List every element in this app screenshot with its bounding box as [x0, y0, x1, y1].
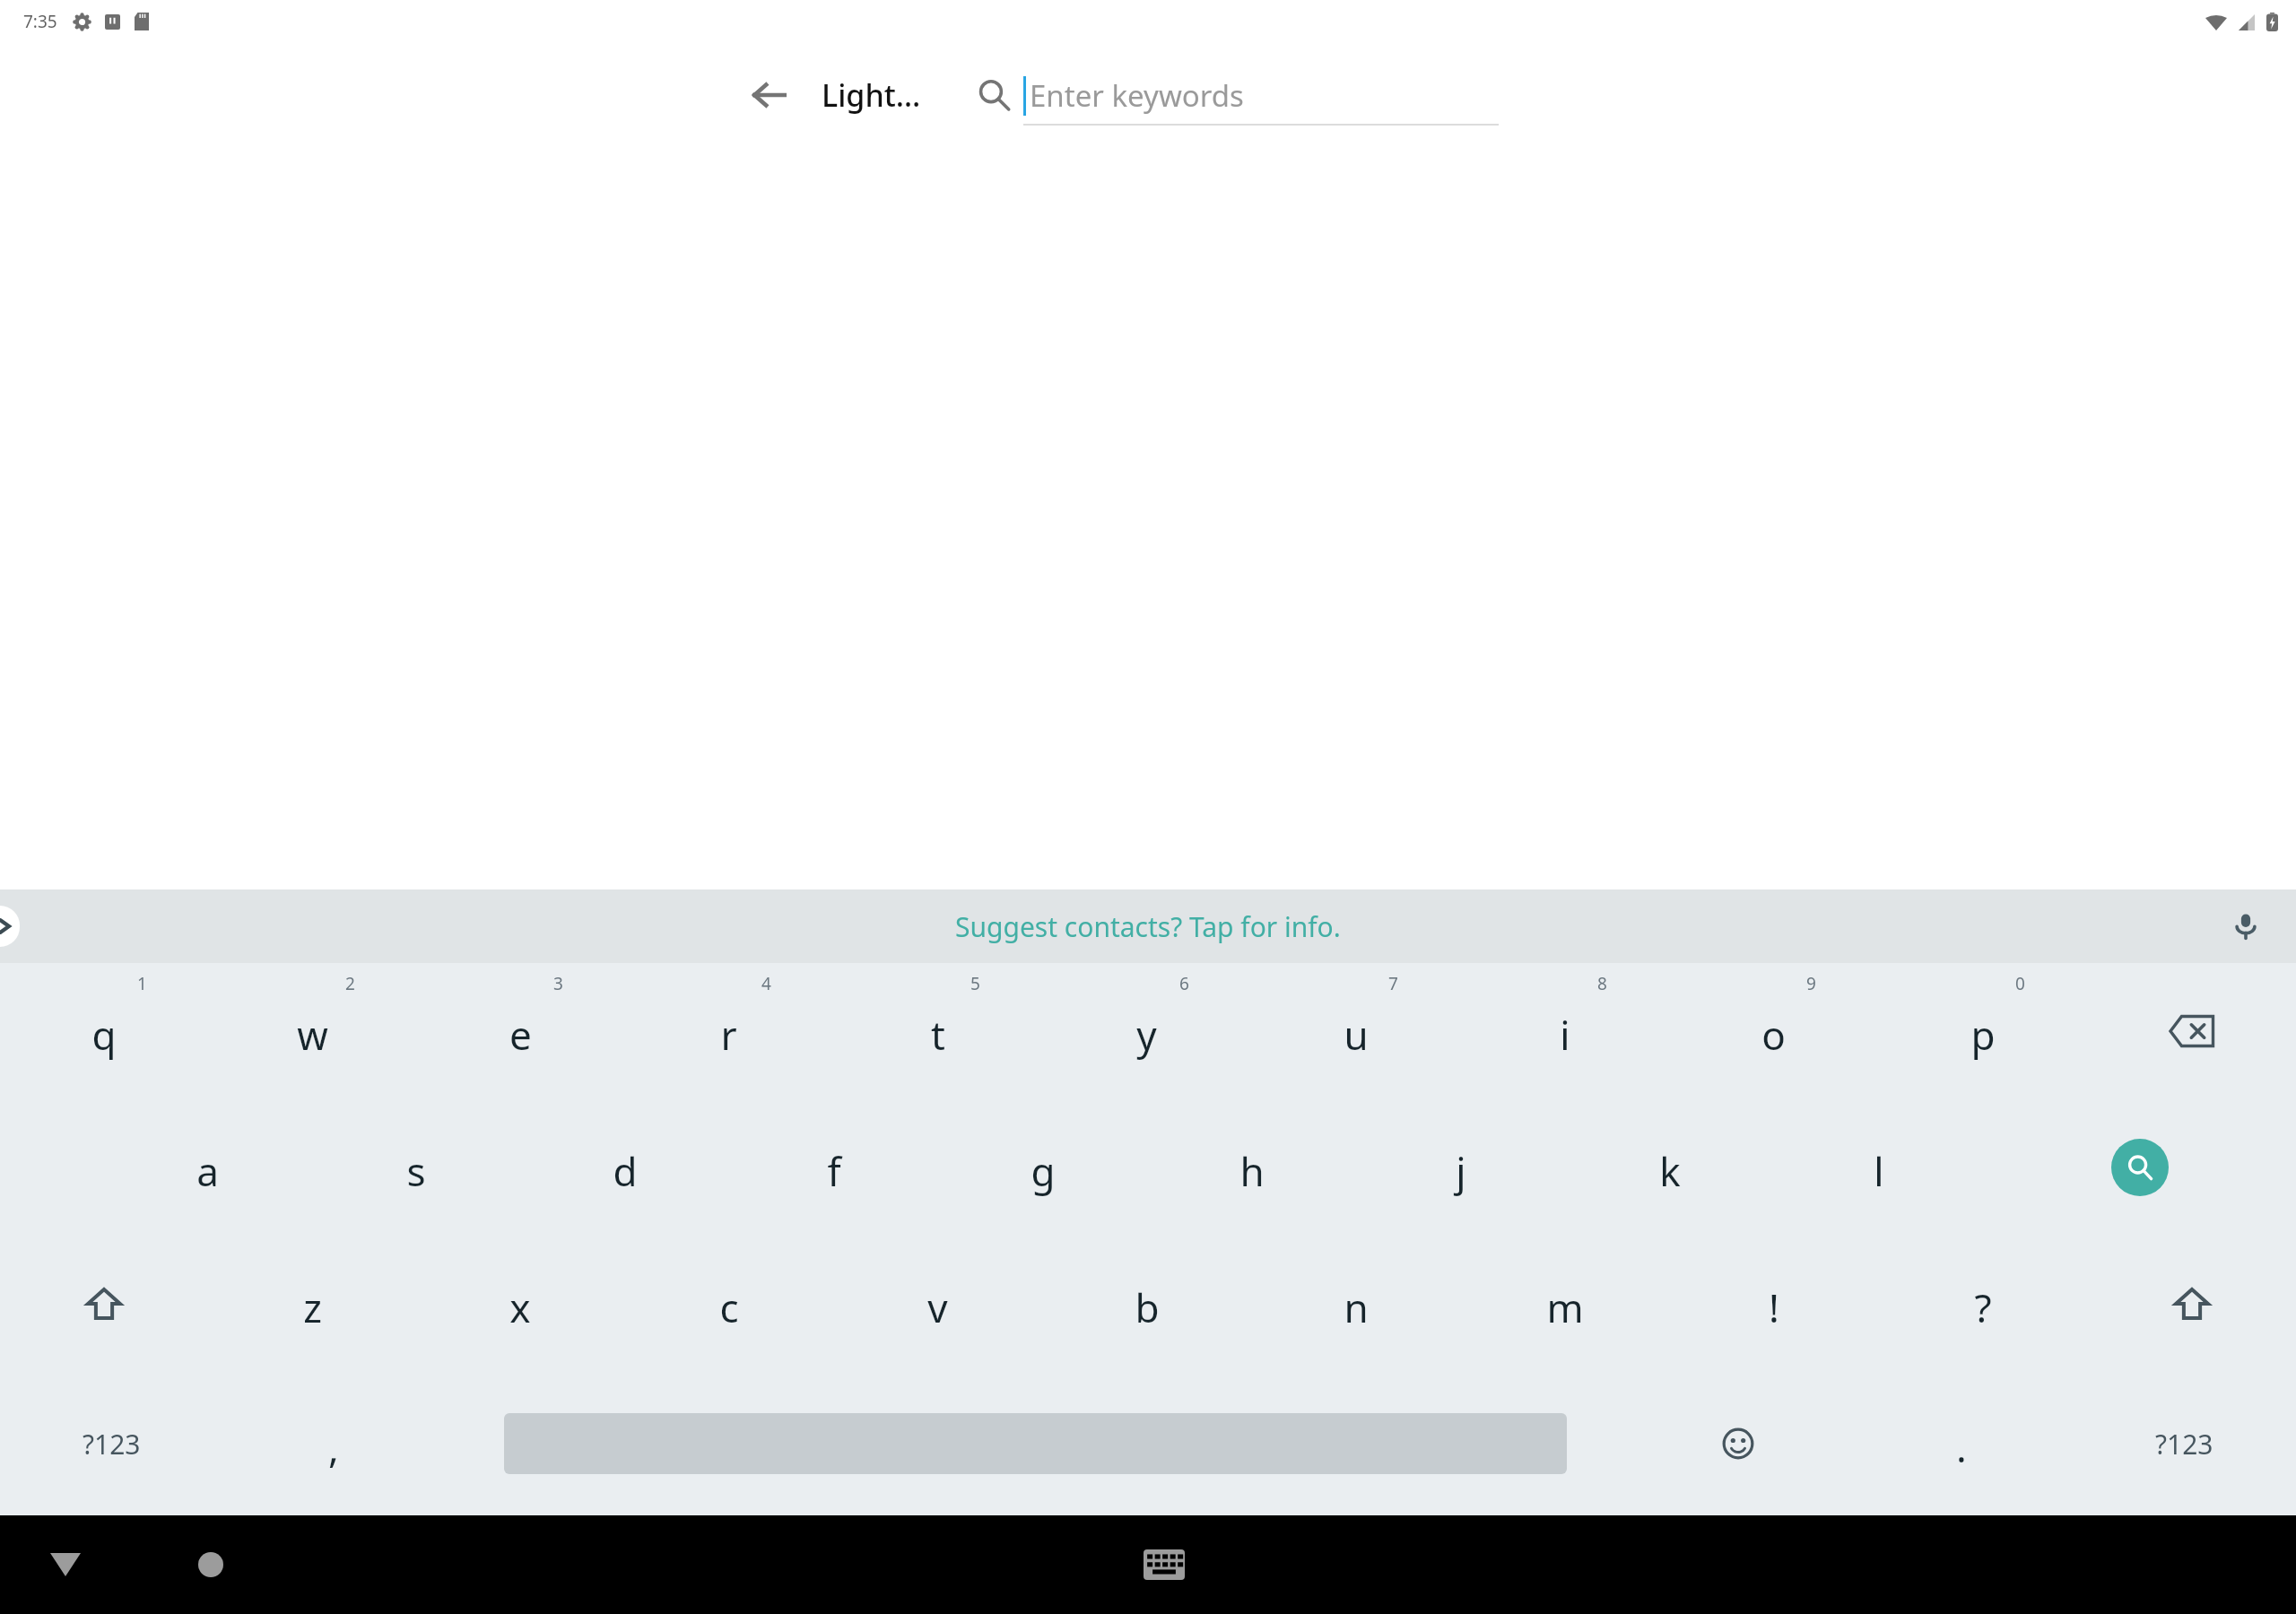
button[interactable]: ?123: [2073, 1372, 2296, 1515]
button[interactable]: l: [1774, 1099, 1983, 1236]
button[interactable]: 7: [1251, 963, 1460, 1099]
staticText: 1: [137, 972, 147, 995]
button[interactable]: Back: [735, 61, 804, 129]
button[interactable]: z: [208, 1236, 416, 1372]
button[interactable]: d: [520, 1099, 729, 1236]
button[interactable]: j: [1356, 1099, 1565, 1236]
staticText: 6: [1179, 972, 1189, 995]
staticText: p: [1970, 1008, 1996, 1062]
button[interactable]: .: [1849, 1372, 2073, 1515]
button[interactable]: n: [1251, 1236, 1460, 1372]
staticText: b: [1135, 1280, 1160, 1334]
button[interactable]: Search: [1983, 1099, 2296, 1236]
staticText: 7: [1388, 972, 1398, 995]
button[interactable]: x: [416, 1236, 624, 1372]
staticText: d: [613, 1144, 638, 1198]
staticText: ?123: [2155, 1426, 2213, 1462]
staticText: s: [406, 1144, 426, 1198]
staticText: w: [297, 1008, 328, 1062]
staticText: h: [1239, 1144, 1265, 1198]
staticText: Light…: [822, 74, 921, 116]
button[interactable]: Expand suggestions: [0, 906, 20, 947]
button[interactable]: 3: [416, 963, 624, 1099]
staticText: .: [1956, 1420, 1967, 1474]
button[interactable]: g: [938, 1099, 1147, 1236]
staticText: 2: [345, 972, 355, 995]
staticText: j: [1456, 1144, 1466, 1198]
staticText: 9: [1806, 972, 1816, 995]
button[interactable]: Enter keywords: [1023, 59, 1499, 131]
staticText: ?: [1974, 1280, 1992, 1334]
staticText: 3: [553, 972, 563, 995]
button[interactable]: 0: [1878, 963, 2087, 1099]
button[interactable]: !: [1669, 1236, 1878, 1372]
button[interactable]: b: [1042, 1236, 1251, 1372]
staticText: y: [1136, 1008, 1157, 1062]
button[interactable]: 5: [833, 963, 1042, 1099]
button[interactable]: 8: [1460, 963, 1669, 1099]
button[interactable]: ?: [1878, 1236, 2087, 1372]
other: Search: [977, 78, 1011, 112]
staticText: Suggest contacts? Tap for info.: [955, 908, 1341, 945]
staticText: g: [1031, 1144, 1056, 1198]
button[interactable]: 6: [1042, 963, 1251, 1099]
staticText: f: [827, 1144, 841, 1198]
staticText: i: [1560, 1008, 1570, 1062]
button[interactable]: Space: [445, 1372, 1626, 1515]
staticText: ,: [328, 1420, 339, 1474]
staticText: t: [931, 1008, 945, 1062]
staticText: 4: [761, 972, 771, 995]
button[interactable]: f: [729, 1099, 938, 1236]
staticText: 0: [2015, 972, 2025, 995]
button[interactable]: c: [624, 1236, 833, 1372]
button[interactable]: 2: [208, 963, 416, 1099]
button[interactable]: 9: [1669, 963, 1878, 1099]
staticText: 7:35: [23, 10, 57, 33]
button[interactable]: Shift: [0, 1236, 208, 1372]
button[interactable]: s: [311, 1099, 520, 1236]
staticText: m: [1546, 1280, 1584, 1334]
button[interactable]: Shift: [2087, 1236, 2296, 1372]
staticText: q: [91, 1008, 117, 1062]
staticText: c: [719, 1280, 739, 1334]
button[interactable]: a: [103, 1099, 311, 1236]
staticText: z: [303, 1280, 322, 1334]
button[interactable]: Hide keyboard: [34, 1533, 97, 1596]
staticText: u: [1344, 1008, 1369, 1062]
staticText: !: [1769, 1280, 1779, 1334]
button[interactable]: Suggest contacts? Tap for info.: [955, 908, 1341, 945]
staticText: k: [1659, 1144, 1681, 1198]
staticText: e: [509, 1008, 532, 1062]
staticText: n: [1344, 1280, 1369, 1334]
staticText: 8: [1597, 972, 1607, 995]
button[interactable]: Voice input: [2221, 901, 2271, 951]
button[interactable]: Backspace: [2087, 963, 2296, 1099]
staticText: Enter keywords: [1030, 75, 1244, 116]
button[interactable]: 4: [624, 963, 833, 1099]
button[interactable]: Switch keyboard: [1130, 1531, 1198, 1599]
button[interactable]: Emoji: [1626, 1372, 1849, 1515]
staticText: r: [720, 1008, 737, 1062]
button[interactable]: ,: [222, 1372, 445, 1515]
button[interactable]: ?123: [0, 1372, 222, 1515]
button[interactable]: h: [1147, 1099, 1356, 1236]
staticText: v: [927, 1280, 948, 1334]
staticText: x: [509, 1280, 531, 1334]
button[interactable]: m: [1460, 1236, 1669, 1372]
staticText: ?123: [83, 1426, 141, 1462]
button[interactable]: Home: [179, 1533, 242, 1596]
button[interactable]: 1: [0, 963, 208, 1099]
staticText: o: [1761, 1008, 1786, 1062]
staticText: 5: [970, 972, 980, 995]
button[interactable]: v: [833, 1236, 1042, 1372]
staticText: a: [196, 1144, 219, 1198]
staticText: l: [1874, 1144, 1884, 1198]
button[interactable]: k: [1565, 1099, 1774, 1236]
